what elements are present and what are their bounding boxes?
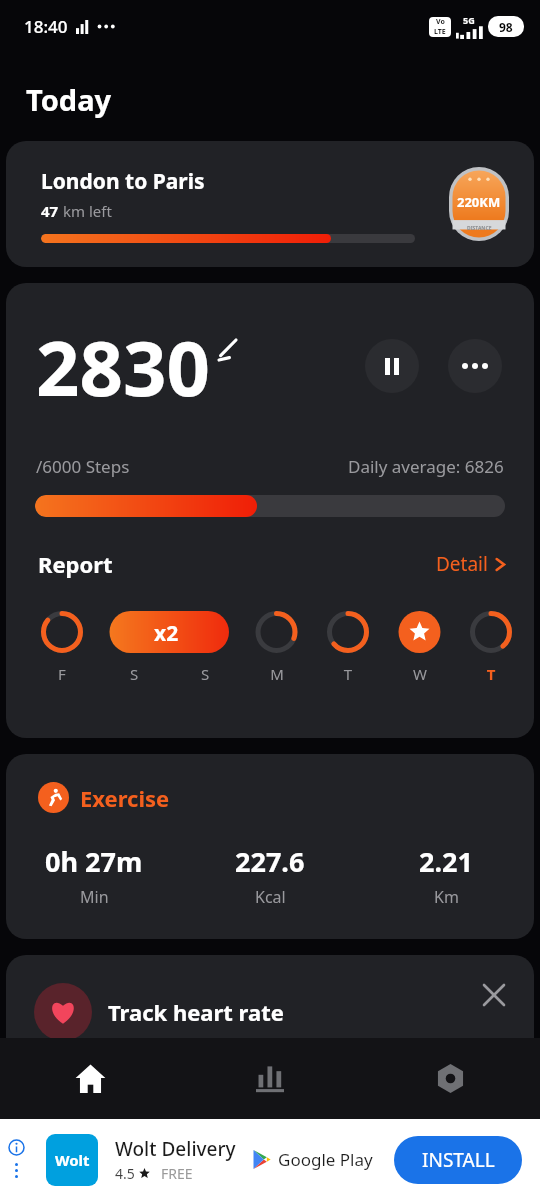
button[interactable]: Edit goal xyxy=(210,333,244,367)
staticText: 47 xyxy=(41,201,63,221)
button[interactable]: Exercise xyxy=(6,754,534,939)
staticText: x2 xyxy=(154,619,179,648)
staticText: Wolt Delivery xyxy=(115,1136,236,1162)
staticText: 220KM xyxy=(457,193,501,211)
staticText: 98 xyxy=(499,19,513,35)
staticText: km left xyxy=(63,201,112,221)
button[interactable]: Track heart rate xyxy=(6,955,534,1075)
staticText: 0h 27m xyxy=(45,843,143,880)
staticText: /6000 Steps xyxy=(36,455,130,478)
staticText: Wolt xyxy=(55,1150,90,1170)
staticText: Today xyxy=(26,80,112,119)
staticText: London to Paris xyxy=(41,167,205,196)
staticText: Track heart rate xyxy=(108,997,284,1027)
button[interactable]: More options xyxy=(448,339,502,393)
staticText: Vo xyxy=(436,17,445,27)
staticText: FREE xyxy=(161,1164,193,1183)
staticText: 4.5 xyxy=(115,1164,135,1183)
staticText: T xyxy=(481,664,501,684)
staticText: Report xyxy=(38,549,113,579)
staticText: 5G xyxy=(463,14,475,26)
staticText: Min xyxy=(80,886,109,908)
staticText: Detail xyxy=(436,551,488,577)
staticText: LTE xyxy=(434,27,446,37)
staticText: W xyxy=(410,664,430,684)
staticText: 2.21 xyxy=(419,843,473,880)
staticText: 18:40 xyxy=(24,15,68,38)
staticText: Google Play xyxy=(278,1148,373,1171)
button[interactable]: Detail xyxy=(436,551,506,577)
button[interactable]: London to Paris xyxy=(6,141,534,267)
button[interactable]: Statistics xyxy=(180,1038,360,1119)
button[interactable]: Settings xyxy=(360,1038,540,1119)
staticText: M xyxy=(267,664,287,684)
staticText: Km xyxy=(434,886,459,908)
staticText: 227.6 xyxy=(235,843,305,880)
staticText: Daily average: 6826 xyxy=(348,455,504,478)
staticText: S xyxy=(195,664,215,684)
staticText: F xyxy=(52,664,72,684)
staticText: Kcal xyxy=(255,886,286,908)
button[interactable]: INSTALL xyxy=(394,1136,522,1184)
staticText: 2830 xyxy=(36,315,210,419)
button[interactable]: Pause xyxy=(365,339,419,393)
button[interactable]: Close xyxy=(476,977,512,1013)
staticText: S xyxy=(124,664,144,684)
staticText: Exercise xyxy=(80,783,170,813)
staticText: T xyxy=(338,664,358,684)
staticText: DISTANCE xyxy=(467,225,492,232)
button[interactable]: Home xyxy=(0,1038,180,1119)
staticText: INSTALL xyxy=(422,1147,495,1173)
